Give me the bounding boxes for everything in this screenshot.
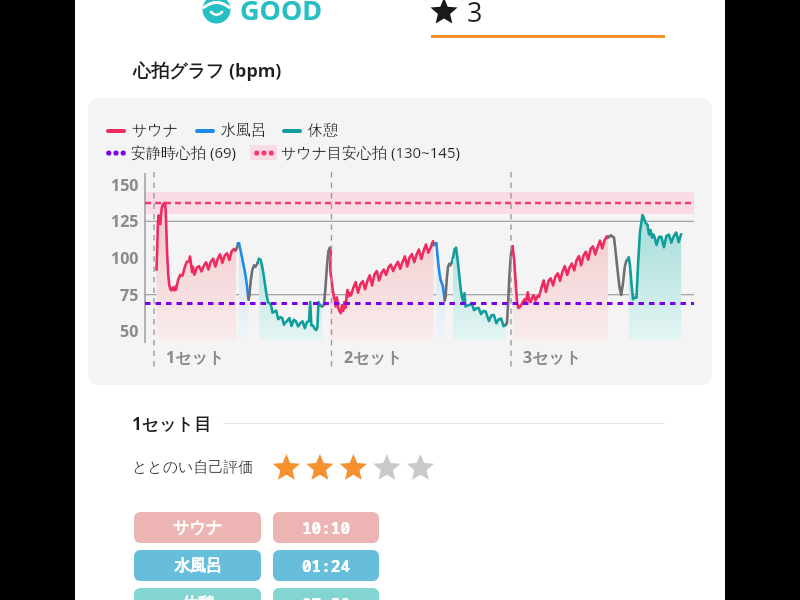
staticText: 150 xyxy=(111,174,139,196)
other: Good condition xyxy=(199,0,234,27)
staticText: GOOD xyxy=(240,0,323,28)
button[interactable]: 休憩 xyxy=(134,588,261,600)
staticText: サウナ xyxy=(173,518,223,538)
button[interactable]: ととのい自己評価 xyxy=(132,452,434,482)
staticText: 休憩 xyxy=(182,594,214,600)
staticText: 安静時心拍 (69) xyxy=(131,142,237,162)
staticText: 休憩 xyxy=(308,121,338,140)
staticText: 水風呂 xyxy=(174,556,222,576)
staticText: サウナ xyxy=(132,121,179,140)
staticText: 水風呂 xyxy=(221,121,266,140)
staticText: 125 xyxy=(111,210,139,232)
staticText: 01:24 xyxy=(302,555,351,577)
staticText: 07:50 xyxy=(302,593,351,600)
staticText: 1セット目 xyxy=(132,412,211,435)
button[interactable]: 07:50 xyxy=(273,588,379,600)
staticText: 50 xyxy=(120,320,139,342)
staticText: 心拍グラフ (bpm) xyxy=(133,58,282,83)
other: 3 of 5 stars xyxy=(272,452,434,482)
staticText: 3セット xyxy=(523,346,582,368)
staticText: 75 xyxy=(120,284,139,306)
staticText: ととのい自己評価 xyxy=(132,458,254,477)
staticText: 10:10 xyxy=(302,517,351,539)
button[interactable]: Good condition xyxy=(199,0,323,28)
staticText: 100 xyxy=(111,247,139,269)
staticText: 2セット xyxy=(344,346,403,368)
staticText: 1セット xyxy=(166,346,225,368)
staticText: サウナ目安心拍 (130~145) xyxy=(281,142,461,162)
other: Rating star xyxy=(430,0,458,26)
button[interactable]: Rating star xyxy=(430,0,483,30)
button[interactable]: 水風呂 xyxy=(134,550,261,581)
button[interactable]: 01:24 xyxy=(273,550,379,581)
staticText: 3 xyxy=(467,0,483,30)
button[interactable]: サウナ xyxy=(134,512,261,543)
button[interactable]: 10:10 xyxy=(273,512,379,543)
